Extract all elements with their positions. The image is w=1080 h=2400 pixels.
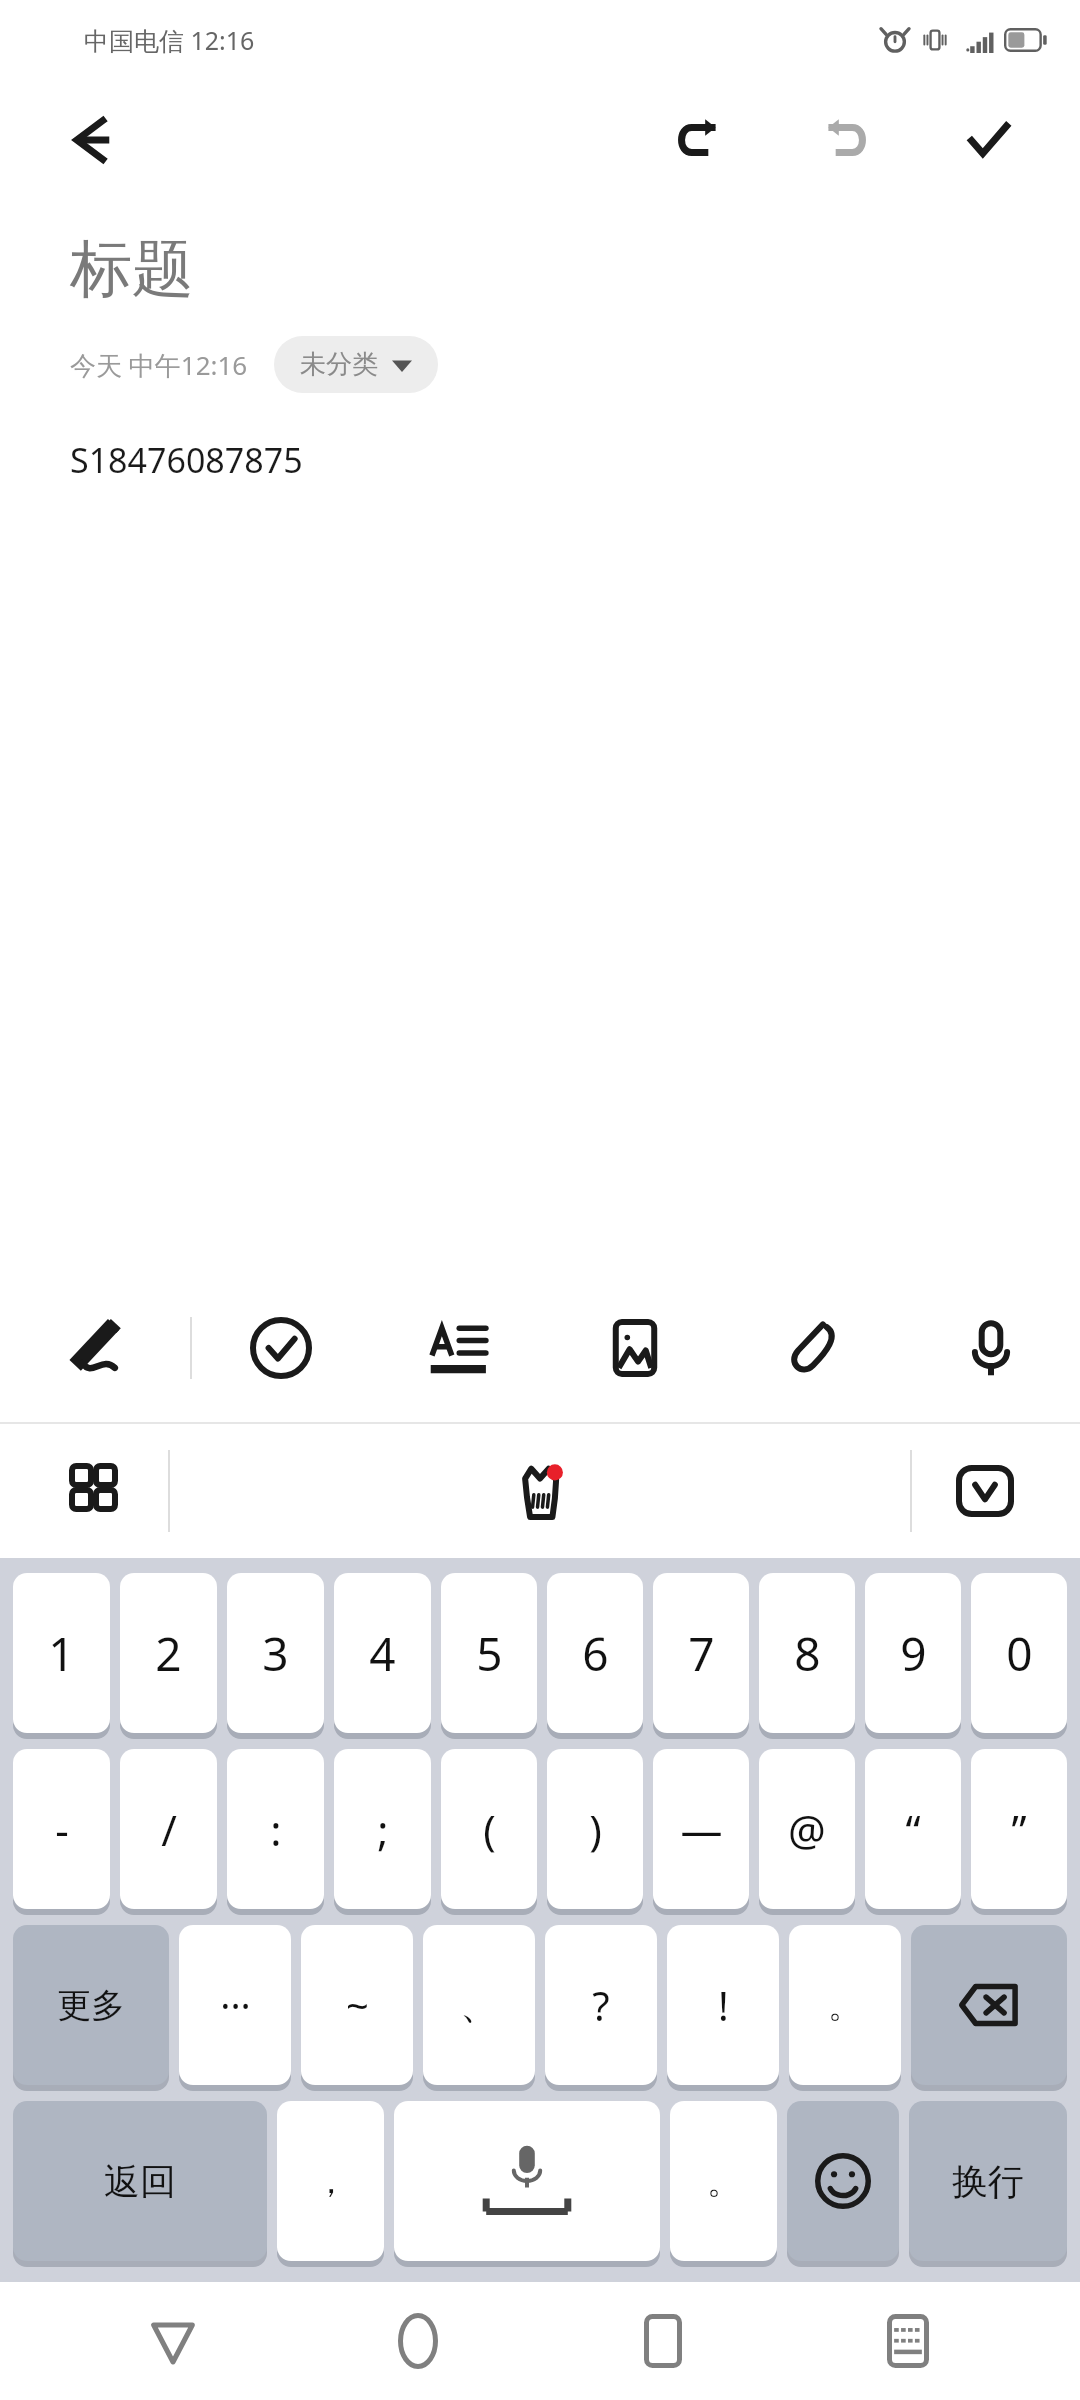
staticText: ( xyxy=(483,1801,496,1858)
staticText: — xyxy=(680,1801,723,1858)
staticText: 7 xyxy=(688,1622,715,1685)
staticText: ; xyxy=(377,1801,389,1858)
button[interactable]: : xyxy=(227,1749,324,1909)
button[interactable]: Hide keyboard xyxy=(940,1446,1030,1536)
staticText: 返回 xyxy=(104,2159,176,2204)
staticText: 8 xyxy=(794,1622,821,1685)
staticText: 1 xyxy=(48,1622,75,1685)
staticText: ! xyxy=(718,1978,729,2032)
staticText: 9 xyxy=(900,1622,927,1685)
button[interactable]: Back xyxy=(48,96,136,184)
button[interactable]: Done xyxy=(940,92,1036,188)
button[interactable]: Home xyxy=(358,2282,478,2400)
staticText: “ xyxy=(905,1801,921,1858)
button[interactable]: 0 xyxy=(971,1573,1067,1733)
staticText: 未分类 xyxy=(300,348,378,381)
button[interactable]: 2 xyxy=(120,1573,217,1733)
button[interactable]: 8 xyxy=(759,1573,855,1733)
button[interactable]: - xyxy=(13,1749,110,1909)
button[interactable]: 、 xyxy=(423,1925,535,2085)
button[interactable]: 4 xyxy=(334,1573,431,1733)
button[interactable]: Switch keyboard xyxy=(848,2282,968,2400)
button[interactable]: Emoji xyxy=(787,2101,899,2261)
staticText: 0 xyxy=(1006,1622,1033,1685)
button[interactable]: Attach xyxy=(724,1274,902,1422)
button[interactable]: “ xyxy=(865,1749,961,1909)
button[interactable]: Image xyxy=(546,1274,724,1422)
staticText: 4 xyxy=(369,1622,396,1685)
button[interactable]: ) xyxy=(547,1749,643,1909)
button[interactable]: — xyxy=(653,1749,749,1909)
button[interactable]: Space xyxy=(394,2101,660,2261)
staticText: 中国电信 12:16 xyxy=(84,23,255,57)
staticText: ” xyxy=(1011,1801,1027,1858)
staticText: 、 xyxy=(460,1981,498,2029)
button[interactable]: 未分类 xyxy=(274,336,438,393)
button[interactable]: 1 xyxy=(13,1573,110,1733)
button[interactable]: ; xyxy=(334,1749,431,1909)
staticText: 今天 中午12:16 xyxy=(70,347,248,383)
button[interactable]: Voice xyxy=(902,1274,1080,1422)
staticText: 。 xyxy=(707,2160,741,2203)
staticText: ? xyxy=(592,1978,610,2032)
staticText: 标题 xyxy=(70,230,194,308)
button[interactable]: ··· xyxy=(179,1925,291,2085)
button[interactable]: 。 xyxy=(670,2101,777,2261)
staticText: 更多 xyxy=(57,1984,125,2027)
button[interactable]: 9 xyxy=(865,1573,961,1733)
button[interactable]: Redo xyxy=(796,92,892,188)
staticText: 换行 xyxy=(952,2159,1024,2204)
button[interactable]: Backspace xyxy=(911,1925,1067,2085)
staticText: 。 xyxy=(828,1984,862,2027)
button[interactable]: Text style xyxy=(369,1274,546,1422)
button[interactable]: 3 xyxy=(227,1573,324,1733)
staticText: S18476087875 xyxy=(70,437,303,483)
button[interactable]: ~ xyxy=(301,1925,413,2085)
button[interactable]: / xyxy=(120,1749,217,1909)
staticText: : xyxy=(270,1801,282,1858)
staticText: 5 xyxy=(476,1622,503,1685)
button[interactable]: 6 xyxy=(547,1573,643,1733)
button[interactable]: Back xyxy=(113,2282,233,2400)
button[interactable]: ! xyxy=(667,1925,779,2085)
button[interactable]: @ xyxy=(759,1749,855,1909)
button[interactable]: Baidu input xyxy=(485,1436,595,1546)
button[interactable]: Undo xyxy=(652,92,748,188)
staticText: / xyxy=(161,1801,177,1858)
button[interactable]: ? xyxy=(545,1925,657,2085)
button[interactable]: ( xyxy=(441,1749,537,1909)
button[interactable]: Checklist xyxy=(192,1274,369,1422)
button[interactable]: 5 xyxy=(441,1573,537,1733)
staticText: ， xyxy=(314,2160,348,2203)
button[interactable]: 返回 xyxy=(13,2101,267,2261)
button[interactable]: 。 xyxy=(789,1925,901,2085)
button[interactable]: 7 xyxy=(653,1573,749,1733)
staticText: ··· xyxy=(220,1979,251,2031)
button[interactable]: Handwrite xyxy=(0,1274,190,1422)
staticText: - xyxy=(55,1801,69,1858)
staticText: @ xyxy=(788,1801,826,1858)
staticText: 6 xyxy=(582,1622,609,1685)
button[interactable]: 换行 xyxy=(909,2101,1067,2261)
button[interactable]: ” xyxy=(971,1749,1067,1909)
staticText: ) xyxy=(589,1801,602,1858)
button[interactable]: ， xyxy=(277,2101,384,2261)
staticText: ~ xyxy=(346,1978,369,2032)
staticText: 3 xyxy=(262,1622,289,1685)
button[interactable]: Recents xyxy=(603,2282,723,2400)
button[interactable]: 更多 xyxy=(13,1925,169,2085)
button[interactable]: Keyboard menu xyxy=(52,1446,142,1536)
staticText: 2 xyxy=(155,1622,182,1685)
